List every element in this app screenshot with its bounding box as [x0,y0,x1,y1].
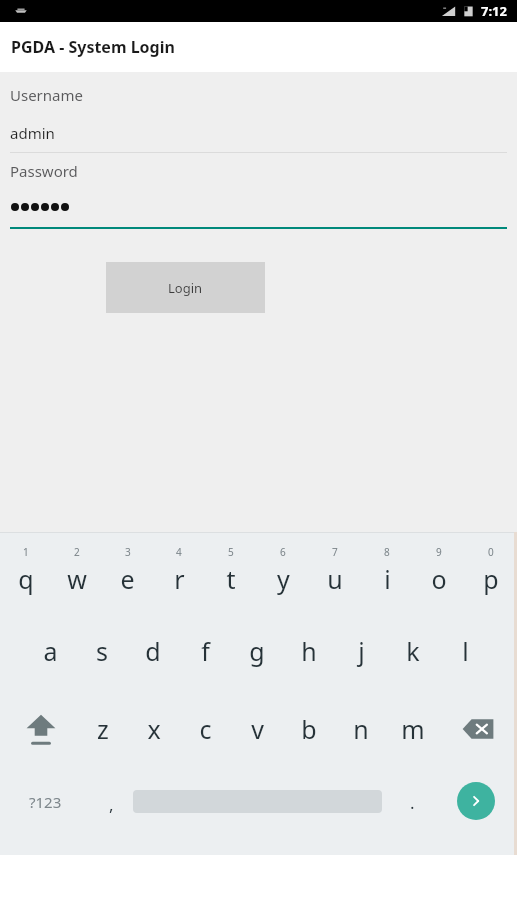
button[interactable]: m [387,692,439,766]
button[interactable]: 1 [0,536,51,610]
button[interactable]: k [387,614,439,688]
staticText: j [358,634,365,668]
staticText: Password [10,161,78,181]
staticText: Login [168,279,203,297]
button[interactable]: 9 [413,536,465,610]
button[interactable]: j [335,614,387,688]
button[interactable]: 0 [465,536,517,610]
staticText: w [67,562,87,596]
staticText: a [43,634,58,668]
staticText: 4 [176,545,182,559]
button[interactable]: x [128,692,179,766]
staticText: 3 [125,545,131,559]
button[interactable]: 4 [153,536,205,610]
button[interactable]: s [76,614,127,688]
button[interactable]: 3 [102,536,153,610]
button[interactable]: 5 [205,536,257,610]
button[interactable]: l [439,614,491,688]
staticText: 1 [23,545,29,559]
staticText: admin [10,123,55,143]
staticText: 2 [74,545,80,559]
button[interactable]: c [179,692,231,766]
staticText: . [410,791,415,814]
button[interactable]: , [90,770,133,850]
staticText: n [353,712,369,746]
staticText: s [96,634,108,668]
staticText: g [249,634,265,668]
staticText: Username [10,85,83,105]
staticText: u [327,562,343,596]
staticText: c [199,712,212,746]
staticText: z [97,712,109,746]
staticText: 5 [228,545,234,559]
staticText: p [483,562,499,596]
staticText: l [462,634,469,668]
staticText: PGDA - System Login [11,36,175,58]
button[interactable]: Shift [0,692,77,766]
staticText: d [145,634,161,668]
staticText: r [174,562,185,596]
button[interactable]: a [25,614,76,688]
staticText: h [301,634,317,668]
staticText: b [301,712,317,746]
button[interactable]: Login [106,262,265,313]
button[interactable]: n [335,692,387,766]
staticText: m [401,712,425,746]
button[interactable]: g [231,614,283,688]
staticText: o [431,562,447,596]
button[interactable]: z [77,692,128,766]
staticText: x [147,712,161,746]
staticText: i [384,562,391,596]
staticText: q [18,562,34,596]
button[interactable]: 6 [257,536,309,610]
staticText: k [406,634,420,668]
button[interactable]: 7 [309,536,361,610]
staticText: y [277,562,290,596]
button[interactable]: 2 [51,536,102,610]
staticText: 7 [332,545,338,559]
button[interactable]: v [231,692,283,766]
staticText: 9 [436,545,442,559]
button[interactable]: . [392,770,432,850]
staticText: e [120,562,135,596]
button[interactable]: Enter [457,782,495,820]
staticText: 8 [384,545,390,559]
button[interactable]: b [283,692,335,766]
staticText: t [226,562,236,596]
button[interactable]: ?123 [0,770,90,850]
staticText: 7:12 [481,2,507,20]
staticText: 6 [280,545,286,559]
staticText: , [109,793,114,816]
staticText: f [201,634,210,668]
button[interactable]: 8 [361,536,413,610]
button[interactable]: Backspace [439,692,517,766]
staticText: ?123 [29,792,62,812]
staticText: 0 [488,545,494,559]
button[interactable]: f [179,614,231,688]
button[interactable]: d [127,614,179,688]
staticText: v [251,712,264,746]
button[interactable]: h [283,614,335,688]
